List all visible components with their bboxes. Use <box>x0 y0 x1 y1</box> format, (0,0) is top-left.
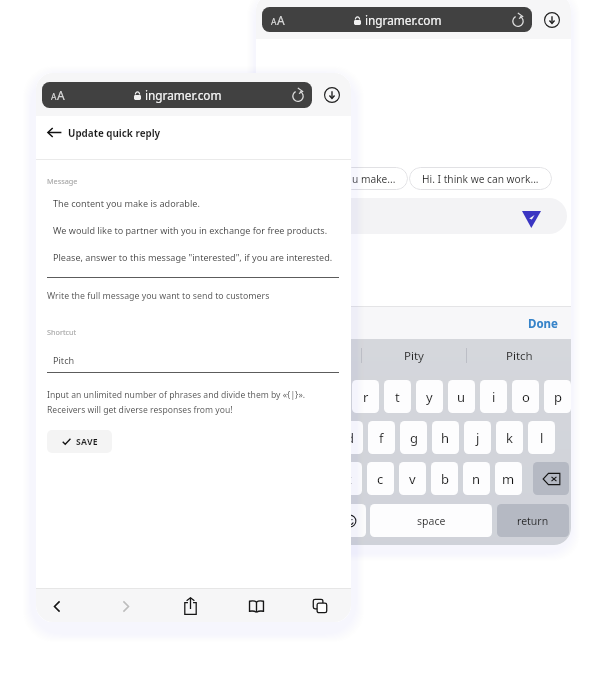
staticText: q <box>266 388 274 406</box>
staticText: space <box>417 514 446 528</box>
staticText: Message <box>47 176 78 186</box>
staticText: c <box>377 470 384 488</box>
button[interactable]: f <box>368 421 395 454</box>
staticText: return <box>517 514 549 528</box>
button[interactable]: Done <box>514 310 571 338</box>
button[interactable]: Forward <box>109 590 141 622</box>
staticText: Write the full message you want to send … <box>47 290 270 302</box>
button[interactable]: space <box>370 504 492 537</box>
staticText: Shortcut <box>47 327 77 337</box>
staticText: Receivers will get diverse responses fro… <box>47 404 233 416</box>
button[interactable]: Emoji <box>334 504 366 537</box>
staticText: p <box>554 388 562 406</box>
button[interactable]: p <box>544 380 571 413</box>
button[interactable]: q <box>256 380 283 413</box>
staticText: A <box>271 16 277 28</box>
button[interactable]: return <box>497 504 569 537</box>
button[interactable]: Back <box>44 122 64 142</box>
staticText: ingramer.com <box>365 12 442 28</box>
button[interactable]: Hi. I think we can work... <box>409 167 552 190</box>
staticText: v <box>409 470 416 488</box>
button[interactable]: r <box>352 380 379 413</box>
staticText: ingramer.com <box>145 87 222 103</box>
button[interactable]: c <box>367 462 394 495</box>
button[interactable]: m <box>495 462 522 495</box>
staticText: Hi. I think we can work... <box>422 172 539 186</box>
staticText: f <box>379 429 384 447</box>
staticText: r <box>363 388 369 406</box>
button[interactable]: l <box>528 421 555 454</box>
staticText: k <box>506 429 513 447</box>
button[interactable]: Back <box>41 590 73 622</box>
staticText: We would like to partner with you in exc… <box>53 224 328 236</box>
staticText: u make... <box>352 172 396 186</box>
button[interactable] <box>263 198 567 234</box>
staticText: t <box>395 388 400 406</box>
button[interactable]: d <box>336 421 363 454</box>
button[interactable]: Downloads <box>544 12 560 28</box>
button[interactable]: b <box>431 462 458 495</box>
button[interactable]: Tabs <box>304 590 336 622</box>
button[interactable]: t <box>384 380 411 413</box>
button[interactable]: h <box>432 421 459 454</box>
button[interactable]: i <box>480 380 507 413</box>
button[interactable] <box>256 339 361 372</box>
staticText: i <box>492 388 496 406</box>
button[interactable]: j <box>464 421 491 454</box>
button[interactable]: Backspace <box>533 462 569 495</box>
staticText: u <box>457 388 466 406</box>
staticText: n <box>472 470 481 488</box>
button[interactable]: SAVE <box>47 430 112 453</box>
button[interactable]: A <box>42 82 312 108</box>
staticText: The content you make is adorable. <box>53 197 200 209</box>
button[interactable]: Share <box>174 590 206 622</box>
button[interactable]: Pity <box>362 339 466 372</box>
staticText: w <box>296 388 307 406</box>
button[interactable]: u <box>448 380 475 413</box>
button[interactable]: Bookmarks <box>240 590 272 622</box>
button[interactable]: v <box>399 462 426 495</box>
staticText: x <box>345 470 352 488</box>
staticText: Update quick reply <box>68 127 161 140</box>
staticText: A <box>51 91 57 103</box>
staticText: A <box>277 12 285 28</box>
staticText: SAVE <box>76 436 98 448</box>
button[interactable]: A <box>262 7 532 32</box>
button[interactable]: o <box>512 380 539 413</box>
button[interactable]: y <box>416 380 443 413</box>
staticText: Pitch <box>53 354 75 366</box>
button[interactable]: Downloads <box>324 87 340 103</box>
staticText: b <box>441 470 449 488</box>
staticText: y <box>426 388 433 406</box>
staticText: j <box>476 429 480 447</box>
staticText: Input an unlimited number of phrases and… <box>47 389 306 401</box>
staticText: m <box>502 470 515 488</box>
staticText: Please, answer to this message "interest… <box>53 251 333 263</box>
staticText: o <box>522 388 530 406</box>
staticText: g <box>410 429 418 447</box>
button[interactable]: n <box>463 462 490 495</box>
staticText: Pitch <box>506 348 533 364</box>
button[interactable]: k <box>496 421 523 454</box>
staticText: h <box>441 429 450 447</box>
staticText: Done <box>528 316 558 332</box>
staticText: l <box>540 429 544 447</box>
button[interactable]: Pitch <box>467 339 571 372</box>
button[interactable]: u make... <box>340 167 408 190</box>
staticText: A <box>57 87 65 103</box>
button[interactable]: g <box>400 421 427 454</box>
button[interactable]: x <box>335 462 362 495</box>
staticText: Pity <box>404 348 424 364</box>
button[interactable]: w <box>288 380 315 413</box>
